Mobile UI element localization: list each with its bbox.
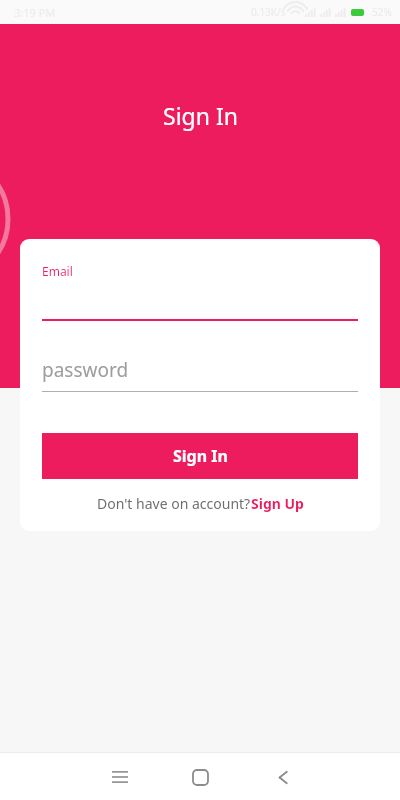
staticText: Sign In — [173, 445, 228, 467]
staticText: Sign In — [163, 100, 238, 131]
button[interactable]: Recent apps — [100, 757, 140, 797]
staticText: Email — [42, 263, 73, 279]
staticText: 52% — [372, 5, 392, 19]
staticText: 3:19 PM — [14, 5, 56, 20]
staticText: Don't have on account? — [97, 494, 251, 513]
button[interactable]: Sign Up — [251, 494, 304, 513]
button[interactable]: Back — [263, 757, 303, 797]
staticText: password — [42, 357, 129, 383]
button[interactable]: Sign In — [42, 433, 358, 479]
staticText: 0.13K/s — [251, 5, 286, 19]
button[interactable]: Home — [180, 757, 220, 797]
